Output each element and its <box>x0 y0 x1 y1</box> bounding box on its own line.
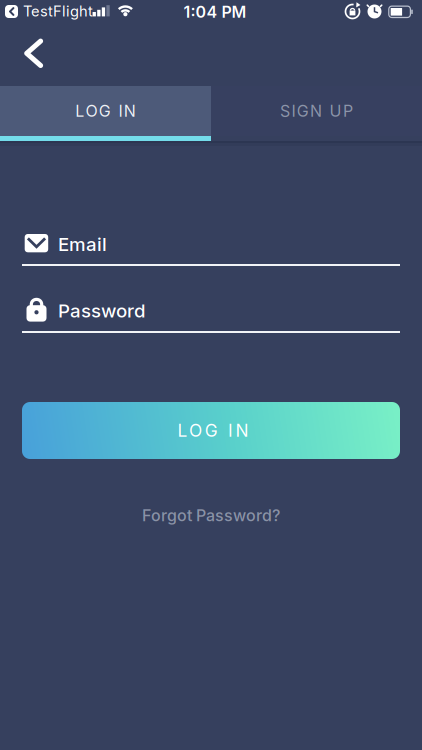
button[interactable]: Email <box>22 224 400 268</box>
staticText: TestFlight <box>23 2 93 20</box>
staticText: SIGN UP <box>280 102 353 120</box>
staticText: 1:04 PM <box>183 2 246 21</box>
staticText: Email <box>58 233 107 255</box>
button[interactable]: Password <box>22 291 400 335</box>
staticText: LOG IN <box>177 420 248 441</box>
button[interactable]: LOG IN <box>22 402 400 459</box>
button[interactable]: Forgot Password? <box>0 506 422 525</box>
button[interactable] <box>12 31 56 75</box>
staticText: LOG IN <box>75 102 136 120</box>
staticText: Forgot Password? <box>142 506 280 525</box>
button[interactable]: SIGN UP <box>211 86 422 136</box>
button[interactable]: LOG IN <box>0 86 211 136</box>
staticText: Password <box>58 300 146 322</box>
